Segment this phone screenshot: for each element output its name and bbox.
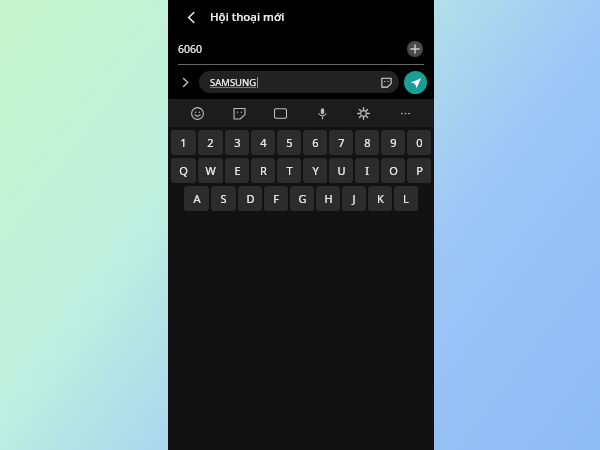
button[interactable]: 2: [198, 130, 223, 155]
staticText: G: [298, 191, 307, 206]
button[interactable]: Add recipient: [404, 38, 426, 60]
button[interactable]: 4: [251, 130, 275, 155]
button[interactable]: 1: [171, 130, 196, 155]
staticText: I: [365, 163, 369, 178]
button[interactable]: E: [225, 158, 249, 183]
button[interactable]: Y: [303, 158, 327, 183]
staticText: 3: [234, 135, 241, 150]
button[interactable]: S: [211, 186, 236, 211]
button[interactable]: Settings: [351, 101, 375, 125]
staticText: R: [260, 163, 267, 178]
staticText: 1: [180, 135, 187, 150]
button[interactable]: F: [264, 186, 288, 211]
button[interactable]: P: [407, 158, 431, 183]
button[interactable]: 3: [225, 130, 249, 155]
button[interactable]: U: [329, 158, 353, 183]
button[interactable]: Q: [171, 158, 196, 183]
button[interactable]: 0: [407, 130, 431, 155]
button[interactable]: J: [342, 186, 366, 211]
button[interactable]: Stickers: [379, 75, 394, 90]
button[interactable]: Expand: [175, 72, 195, 92]
button[interactable]: W: [198, 158, 223, 183]
button[interactable]: L: [394, 186, 418, 211]
staticText: T: [286, 163, 293, 178]
staticText: W: [205, 163, 216, 178]
staticText: D: [246, 191, 255, 206]
staticText: F: [273, 191, 279, 206]
staticText: H: [324, 191, 333, 206]
staticText: E: [234, 163, 241, 178]
staticText: 0: [416, 135, 423, 150]
staticText: U: [337, 163, 346, 178]
button[interactable]: D: [238, 186, 262, 211]
staticText: 6: [312, 135, 319, 150]
button[interactable]: G: [290, 186, 314, 211]
button[interactable]: More: [393, 101, 417, 125]
button[interactable]: Stickers: [227, 101, 251, 125]
button[interactable]: 5: [277, 130, 301, 155]
button[interactable]: H: [316, 186, 340, 211]
button[interactable]: Voice input: [310, 101, 334, 125]
button[interactable]: Emoji: [185, 101, 209, 125]
staticText: 2: [207, 135, 214, 150]
button[interactable]: 6: [303, 130, 327, 155]
staticText: 5: [286, 135, 293, 150]
button[interactable]: 7: [329, 130, 353, 155]
staticText: 6060: [178, 42, 203, 56]
button[interactable]: K: [368, 186, 392, 211]
button[interactable]: A: [184, 186, 209, 211]
button[interactable]: SAMSUNG: [199, 71, 399, 93]
button[interactable]: 9: [381, 130, 405, 155]
button[interactable]: 8: [355, 130, 379, 155]
staticText: S: [220, 191, 227, 206]
staticText: Hội thoại mới: [210, 9, 285, 25]
staticText: Y: [312, 163, 319, 178]
staticText: 9: [390, 135, 397, 150]
staticText: 4: [260, 135, 267, 150]
staticText: J: [352, 191, 356, 206]
button[interactable]: R: [251, 158, 275, 183]
button[interactable]: O: [381, 158, 405, 183]
staticText: 7: [338, 135, 345, 150]
staticText: P: [416, 163, 423, 178]
staticText: Q: [179, 163, 188, 178]
staticText: O: [389, 163, 398, 178]
staticText: K: [377, 191, 384, 206]
staticText: 8: [364, 135, 371, 150]
button[interactable]: T: [277, 158, 301, 183]
staticText: L: [403, 191, 409, 206]
button[interactable]: I: [355, 158, 379, 183]
button[interactable]: Back: [178, 4, 204, 30]
button[interactable]: GIF: [268, 101, 292, 125]
staticText: A: [193, 191, 201, 206]
staticText: SAMSUNG: [210, 76, 257, 89]
button[interactable]: Send: [404, 71, 427, 94]
